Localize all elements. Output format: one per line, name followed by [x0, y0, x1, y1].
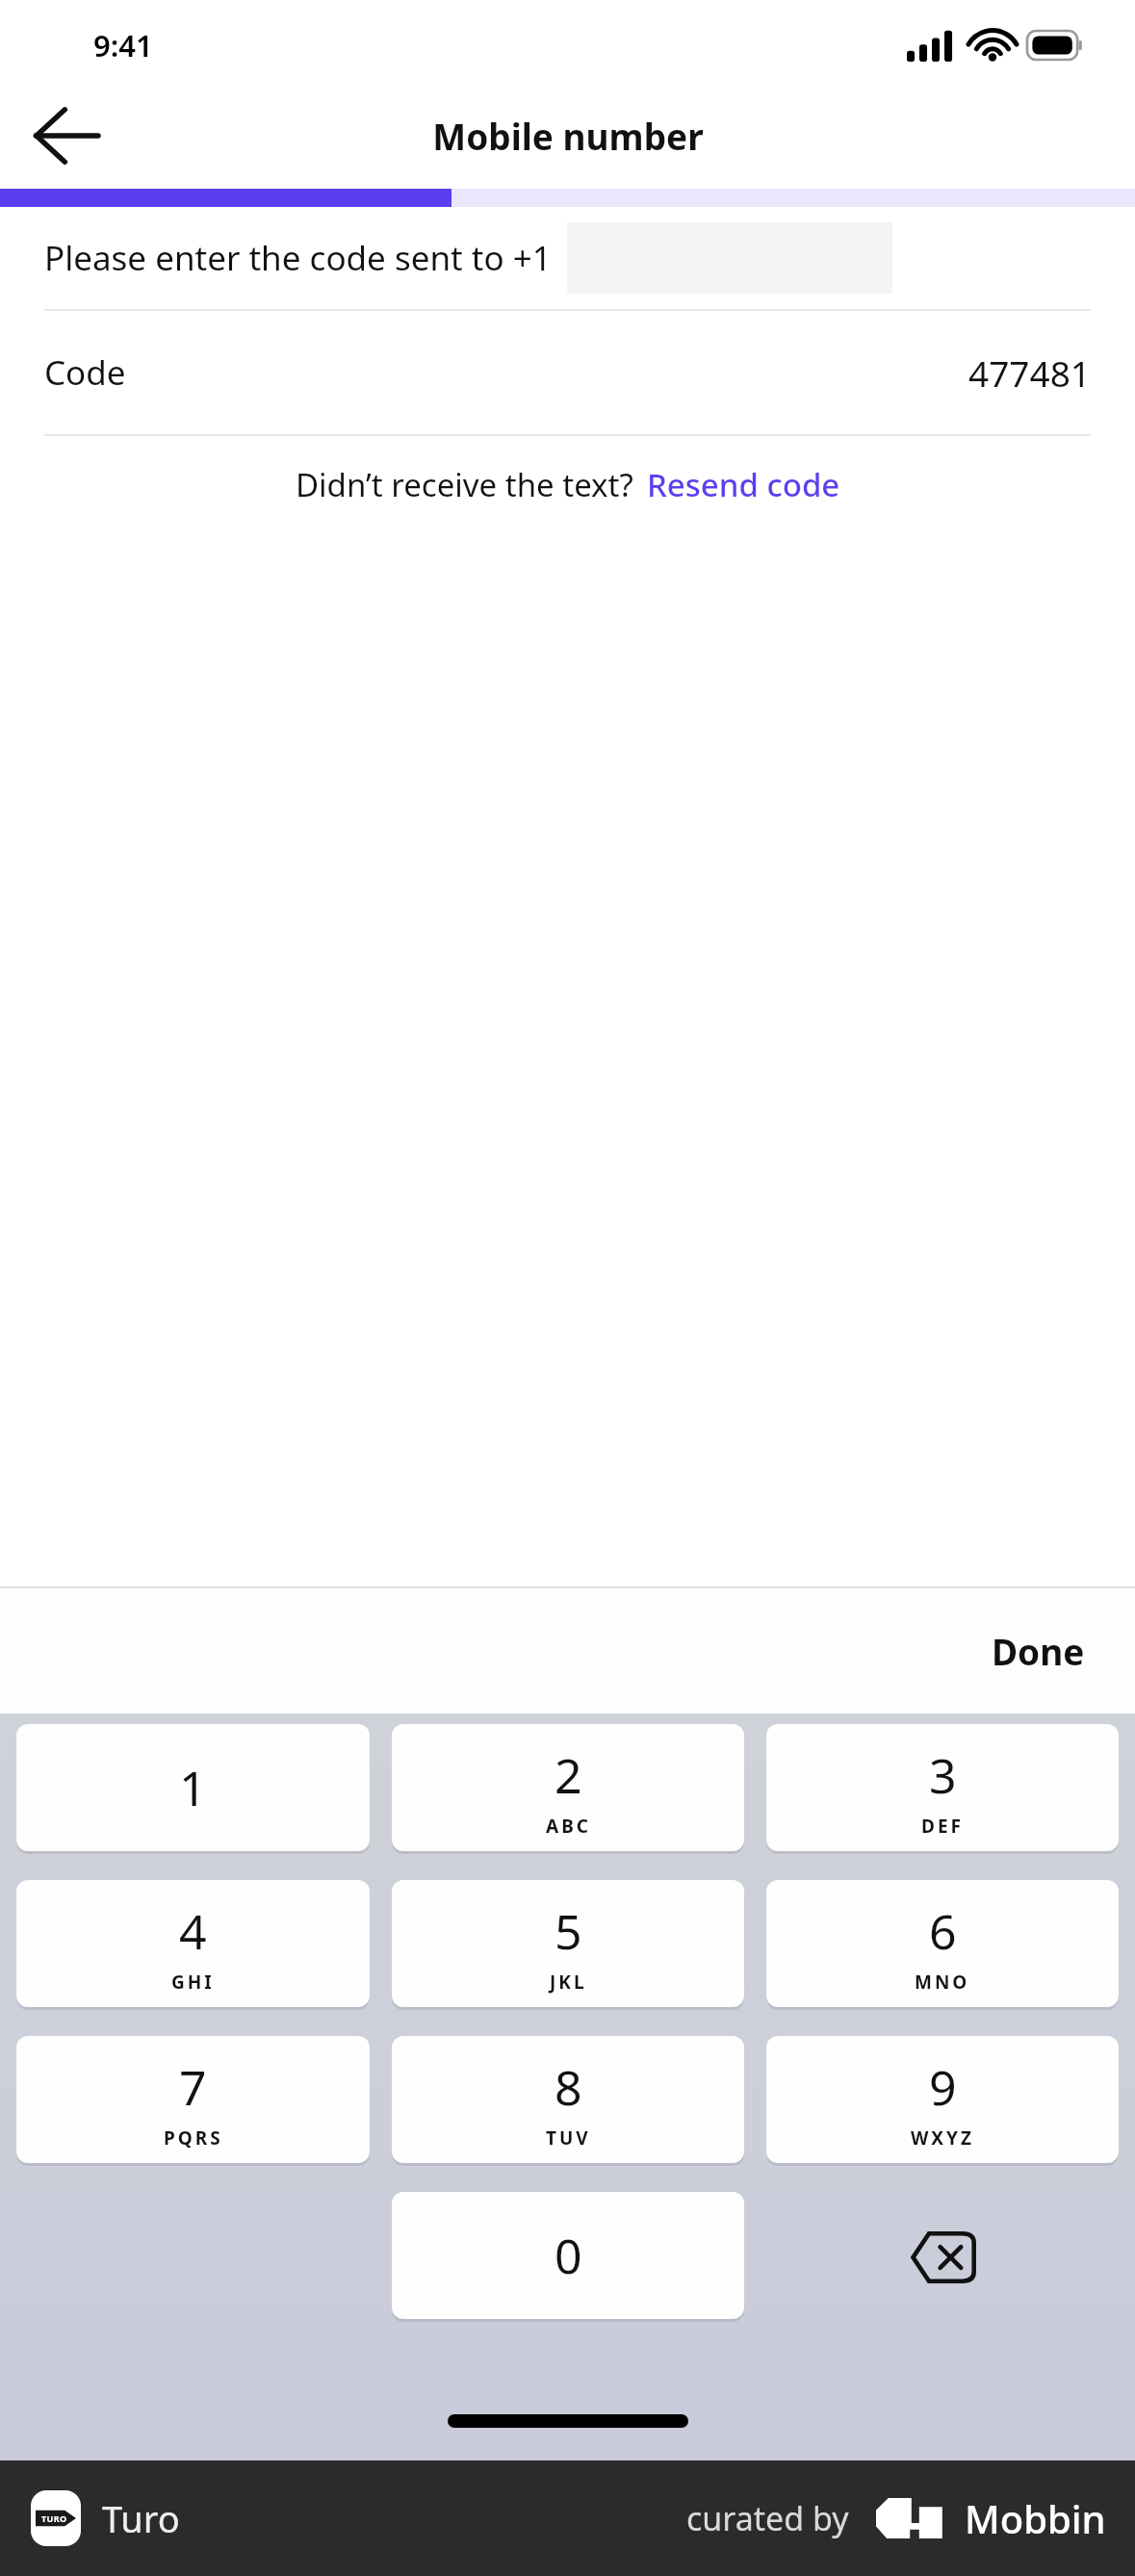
staticText: 477481 — [968, 348, 1091, 397]
button[interactable]: Code — [0, 311, 1135, 434]
staticText: Didn’t receive the text? — [296, 463, 633, 506]
staticText: Please enter the code sent to +1 — [44, 235, 552, 281]
staticText: TUV — [546, 2125, 591, 2151]
staticText: 7 — [179, 2054, 207, 2120]
staticText: 9 — [929, 2054, 957, 2120]
staticText: Resend code — [647, 463, 840, 506]
staticText: 5 — [555, 1898, 582, 1964]
button[interactable]: 0 — [392, 2192, 744, 2319]
staticText: 1 — [179, 1755, 207, 1820]
button[interactable]: 9 — [766, 2036, 1119, 2163]
staticText: 2 — [555, 1742, 582, 1808]
staticText: Turo — [102, 2493, 180, 2543]
button[interactable]: Back — [21, 91, 110, 180]
staticText: PQRS — [164, 2125, 223, 2151]
staticText: GHI — [171, 1970, 215, 1995]
staticText: MNO — [915, 1970, 970, 1995]
staticText: 8 — [555, 2054, 582, 2120]
button[interactable]: Done — [970, 1613, 1106, 1688]
staticText: DEF — [921, 1814, 964, 1839]
button[interactable]: 3 — [766, 1724, 1119, 1851]
staticText: 6 — [929, 1898, 957, 1964]
staticText: Done — [992, 1627, 1085, 1675]
staticText: 9:41 — [93, 25, 153, 65]
button[interactable]: 4 — [16, 1880, 370, 2007]
staticText: TURO — [41, 2512, 67, 2524]
button[interactable]: Backspace — [766, 2192, 1119, 2322]
staticText: Mobbin — [965, 2492, 1106, 2544]
button[interactable]: 5 — [392, 1880, 744, 2007]
staticText: 4 — [179, 1898, 207, 1964]
button[interactable]: 6 — [766, 1880, 1119, 2007]
staticText: curated by — [686, 2496, 849, 2540]
staticText: Mobile number — [432, 112, 704, 160]
button[interactable]: 2 — [392, 1724, 744, 1851]
staticText: 0 — [555, 2223, 582, 2288]
button[interactable]: 7 — [16, 2036, 370, 2163]
button[interactable]: 1 — [16, 1724, 370, 1851]
staticText: 3 — [929, 1742, 957, 1808]
staticText: Code — [44, 349, 126, 396]
staticText: WXYZ — [911, 2125, 974, 2151]
staticText: ABC — [546, 1814, 591, 1839]
button[interactable]: 8 — [392, 2036, 744, 2163]
staticText: JKL — [550, 1970, 587, 1995]
button[interactable]: Resend code — [647, 463, 840, 506]
